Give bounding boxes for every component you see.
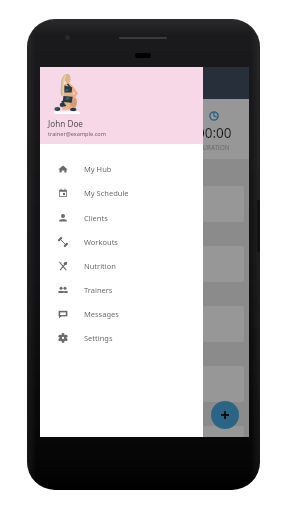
button[interactable]: Trainers	[40, 278, 203, 302]
staticText: John Doe	[48, 118, 83, 129]
staticText: Nutrition	[84, 261, 116, 271]
button[interactable]: My Schedule	[40, 181, 203, 205]
staticText: Settings	[84, 333, 113, 343]
button[interactable]: Nutrition	[40, 254, 203, 278]
button[interactable]: Messages	[40, 302, 203, 326]
button[interactable]: Clients	[40, 206, 203, 230]
staticText: Workouts	[84, 237, 118, 247]
staticText: 00:00	[57, 124, 92, 142]
staticText: Clients	[84, 213, 108, 223]
button[interactable]	[45, 366, 244, 402]
button[interactable]: My Hub	[40, 157, 203, 181]
button[interactable]: Add	[211, 401, 239, 429]
staticText: Messages	[84, 309, 119, 319]
staticText: 00:00	[197, 124, 232, 142]
staticText: Trainers	[84, 285, 113, 295]
button[interactable]: Workouts	[40, 230, 203, 254]
staticText: trainer@example.com	[48, 130, 106, 138]
button[interactable]	[45, 246, 244, 282]
staticText: DURATION	[198, 143, 230, 151]
button[interactable]	[45, 186, 244, 222]
staticText: DURATION	[59, 143, 91, 151]
button[interactable]: Settings	[40, 326, 203, 350]
button[interactable]	[45, 426, 244, 437]
button[interactable]	[45, 306, 244, 342]
staticText: My Hub	[84, 164, 112, 174]
staticText: My Schedule	[84, 188, 129, 198]
staticText: CALORIES	[130, 143, 159, 151]
